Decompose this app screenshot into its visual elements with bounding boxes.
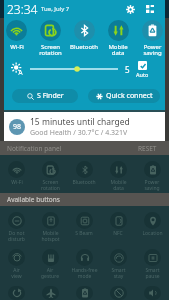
button[interactable]: Air gesture (33, 243, 67, 280)
button[interactable]: Screen rotation (33, 155, 67, 193)
button[interactable]: Air view (0, 243, 33, 280)
button[interactable]: Bluetooth (67, 155, 101, 193)
staticText: Wi-Fi (11, 179, 23, 186)
button[interactable]: Smart pause (135, 243, 169, 280)
button[interactable]: Brightness (10, 62, 24, 76)
button[interactable]: NFC (101, 206, 135, 243)
staticText: Smart stay (111, 267, 126, 280)
staticText: Power saving (144, 179, 160, 192)
staticText: Air gesture (41, 267, 59, 280)
button[interactable]: Mobile data (101, 155, 135, 193)
button[interactable]: Wi-Fi (0, 18, 33, 56)
staticText: S Beam (75, 230, 93, 237)
staticText: S Finder (37, 91, 64, 101)
button[interactable]: 98 (4, 112, 165, 141)
staticText: Tue, July 7 (41, 5, 70, 13)
button[interactable]: Screen rotation (33, 18, 67, 56)
staticText: Mobile hotspot (41, 230, 60, 243)
staticText: 5 (125, 64, 130, 75)
button[interactable]: Settings (126, 5, 135, 14)
staticText: 23:34 (7, 1, 38, 17)
staticText: Bluetooth (70, 43, 98, 51)
button[interactable]: Auto (136, 61, 149, 78)
button[interactable]: Power saving (135, 18, 169, 56)
staticText: Available buttons (7, 195, 60, 204)
button[interactable]: Do not disturb (0, 206, 33, 243)
button[interactable] (30, 63, 118, 75)
staticText: Smart pause (145, 267, 160, 280)
button[interactable]: Quick connect (88, 89, 160, 103)
staticText: Auto (136, 71, 149, 78)
staticText: Screen rotation (41, 179, 60, 192)
button[interactable]: Mobile data (101, 18, 135, 56)
staticText: Bluetooth (72, 179, 96, 186)
button[interactable]: S Finder (12, 89, 78, 103)
button[interactable]: Edit quick settings (146, 5, 154, 13)
staticText: Screen rotation (39, 43, 62, 56)
staticText: Quick connect (106, 91, 153, 101)
staticText: Power saving (143, 43, 162, 56)
staticText: Wi-Fi (10, 43, 24, 51)
button[interactable]: Power saving (135, 155, 169, 193)
button[interactable]: Wi-Fi (0, 155, 33, 193)
button[interactable]: Sync (0, 280, 33, 300)
button[interactable]: Sound (135, 280, 169, 300)
staticText: Mobile data (110, 179, 127, 192)
staticText: Hands-free mode (71, 267, 98, 280)
staticText: Good Health / 30.7°C / 4.321V (30, 128, 128, 138)
staticText: 98 (13, 122, 22, 132)
button[interactable]: Mobile hotspot (33, 206, 67, 243)
staticText: NFC (113, 230, 123, 237)
staticText: 15 minutes until charged (30, 116, 130, 128)
staticText: RESET (138, 144, 157, 153)
button[interactable]: Blocking mode (101, 280, 135, 300)
button[interactable]: Bluetooth (67, 18, 101, 56)
button[interactable]: Ultra power (67, 280, 101, 300)
staticText: Air view (11, 267, 22, 280)
staticText: Mobile data (108, 43, 128, 56)
staticText: Notification panel (7, 144, 62, 153)
button[interactable]: RESET (138, 144, 157, 153)
button[interactable]: S Beam (67, 206, 101, 243)
button[interactable]: Airplane mode (33, 280, 67, 300)
button[interactable]: Smart stay (101, 243, 135, 280)
staticText: Do not disturb (8, 230, 25, 243)
staticText: Location (142, 230, 163, 237)
button[interactable]: Hands-free mode (67, 243, 101, 280)
button[interactable]: Location (135, 206, 169, 243)
